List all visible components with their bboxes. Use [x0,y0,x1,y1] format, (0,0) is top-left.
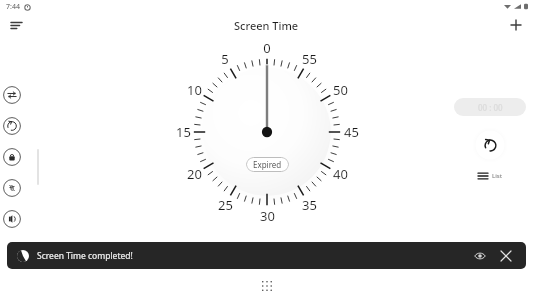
staticText: 0 [263,39,271,57]
staticText: 10 [187,81,202,99]
staticText: 15 [176,123,191,141]
button[interactable]: Lock [2,147,22,167]
staticText: Expired [253,159,282,170]
button[interactable]: Expired [246,157,289,172]
staticText: 40 [333,165,348,183]
button[interactable]: 00 : 00 [454,98,526,116]
staticText: 55 [302,50,317,68]
button[interactable]: Dismiss [496,246,516,266]
button[interactable]: Preview [470,246,490,266]
button[interactable]: Reset [474,129,506,161]
staticText: 7:44 [6,2,20,12]
staticText: Screen Time completed! [37,250,133,262]
button[interactable]: Screen Time completed! [7,242,526,269]
button[interactable]: Repeat [2,85,22,105]
button[interactable]: All apps [255,274,279,298]
staticText: List [492,172,503,180]
button[interactable]: Add timer [503,13,529,37]
staticText: 20 [187,165,202,183]
staticText: Screen Time [234,18,299,33]
staticText: 00 : 00 [478,102,503,113]
staticText: 25 [218,196,233,214]
staticText: 5 [221,50,229,68]
button[interactable]: Volume [2,209,22,229]
button[interactable]: List [468,167,513,185]
staticText: 30 [260,207,275,225]
button[interactable]: Restore [2,116,22,136]
staticText: 45 [344,123,359,141]
staticText: 35 [302,196,317,214]
button[interactable]: Menu [3,13,29,37]
staticText: 50 [333,81,348,99]
button[interactable]: Shuffle [2,178,22,198]
